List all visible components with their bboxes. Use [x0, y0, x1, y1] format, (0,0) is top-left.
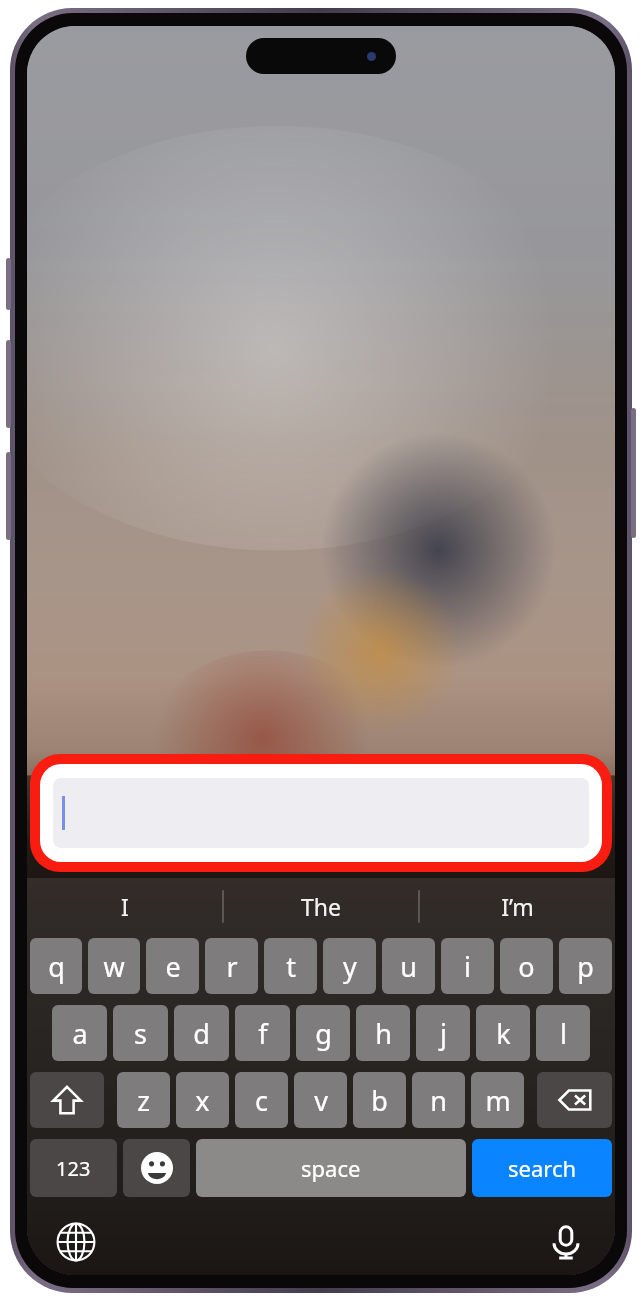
- button[interactable]: [53, 778, 589, 848]
- button[interactable]: z: [117, 1072, 170, 1128]
- button[interactable]: m: [471, 1072, 524, 1128]
- button[interactable]: Backspace: [537, 1072, 612, 1128]
- button[interactable]: d: [174, 1005, 229, 1061]
- button[interactable]: I: [27, 878, 223, 934]
- button[interactable]: g: [296, 1005, 350, 1061]
- staticText: I’m: [501, 891, 534, 922]
- staticText: g: [315, 1015, 332, 1052]
- button[interactable]: i: [441, 938, 494, 994]
- staticText: a: [72, 1015, 88, 1052]
- staticText: h: [375, 1015, 392, 1052]
- button[interactable]: w: [88, 938, 140, 994]
- staticText: w: [103, 948, 125, 985]
- button[interactable]: r: [205, 938, 258, 994]
- staticText: x: [195, 1082, 210, 1119]
- staticText: e: [165, 948, 181, 985]
- staticText: p: [577, 948, 594, 985]
- staticText: b: [371, 1082, 388, 1119]
- staticText: t: [286, 948, 296, 985]
- staticText: u: [400, 948, 417, 985]
- staticText: s: [134, 1015, 147, 1052]
- button[interactable]: j: [416, 1005, 470, 1061]
- staticText: f: [258, 1015, 268, 1052]
- staticText: n: [430, 1082, 447, 1119]
- button[interactable]: search: [472, 1139, 612, 1197]
- button[interactable]: s: [113, 1005, 168, 1061]
- button[interactable]: Shift: [30, 1072, 104, 1128]
- button[interactable]: a: [52, 1005, 107, 1061]
- button[interactable]: u: [382, 938, 435, 994]
- button[interactable]: I’m: [419, 878, 615, 934]
- button[interactable]: 123: [30, 1139, 117, 1197]
- staticText: l: [560, 1015, 567, 1052]
- staticText: i: [464, 948, 471, 985]
- staticText: q: [48, 948, 65, 985]
- button[interactable]: Emoji: [123, 1139, 190, 1197]
- staticText: y: [343, 948, 357, 985]
- staticText: The: [301, 891, 341, 922]
- button[interactable]: v: [294, 1072, 347, 1128]
- staticText: j: [440, 1015, 447, 1052]
- staticText: m: [485, 1082, 511, 1119]
- button[interactable]: space: [196, 1139, 466, 1197]
- button[interactable]: Dictation: [539, 1215, 593, 1269]
- button[interactable]: q: [30, 938, 82, 994]
- button[interactable]: k: [476, 1005, 530, 1061]
- button[interactable]: h: [356, 1005, 410, 1061]
- button[interactable]: x: [176, 1072, 229, 1128]
- staticText: space: [301, 1153, 361, 1183]
- button[interactable]: The: [223, 878, 419, 934]
- staticText: c: [255, 1082, 268, 1119]
- staticText: v: [314, 1082, 328, 1119]
- button[interactable]: c: [235, 1072, 288, 1128]
- staticText: 123: [56, 1155, 91, 1182]
- staticText: k: [496, 1015, 511, 1052]
- button[interactable]: f: [235, 1005, 290, 1061]
- button[interactable]: o: [500, 938, 553, 994]
- staticText: r: [226, 948, 238, 985]
- button[interactable]: l: [536, 1005, 590, 1061]
- staticText: z: [137, 1082, 150, 1119]
- staticText: o: [518, 948, 535, 985]
- button[interactable]: y: [323, 938, 376, 994]
- button[interactable]: b: [353, 1072, 406, 1128]
- button[interactable]: e: [146, 938, 199, 994]
- staticText: search: [508, 1153, 577, 1183]
- button[interactable]: t: [264, 938, 317, 994]
- button[interactable]: p: [559, 938, 612, 994]
- staticText: I: [121, 891, 129, 922]
- staticText: d: [193, 1015, 210, 1052]
- button[interactable]: n: [412, 1072, 465, 1128]
- button[interactable]: Change keyboard language: [49, 1215, 103, 1269]
